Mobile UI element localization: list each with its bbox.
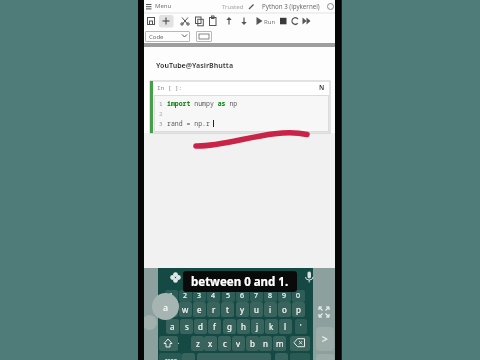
button[interactable]: 7: [250, 290, 263, 302]
staticText: g: [227, 321, 232, 332]
button[interactable]: f: [208, 319, 221, 334]
staticText: import numpy as np: [167, 99, 238, 108]
staticText: a: [170, 321, 175, 332]
button[interactable]: l: [279, 319, 292, 334]
staticText: z: [196, 338, 200, 349]
staticText: N: [319, 83, 325, 92]
button[interactable]: 3: [193, 290, 206, 302]
button[interactable]: Code: [145, 31, 190, 42]
staticText: n: [263, 338, 268, 349]
staticText: Trusted: [222, 3, 244, 11]
button[interactable]: 8: [264, 290, 277, 302]
staticText: 7: [254, 291, 259, 301]
staticText: u: [254, 304, 259, 315]
staticText: 3: [197, 291, 202, 301]
staticText: Run: [264, 18, 276, 26]
button[interactable]: u: [250, 302, 263, 317]
button[interactable]: i: [264, 302, 277, 317]
staticText: 1: [159, 100, 163, 108]
staticText: 3: [159, 120, 163, 128]
staticText: c: [223, 338, 227, 349]
staticText: d: [198, 321, 203, 332]
button[interactable]: w: [179, 302, 192, 317]
button[interactable]: ?123: [159, 353, 182, 360]
staticText: rand = np.r: [167, 119, 210, 128]
staticText: y: [240, 304, 245, 315]
button[interactable]: e: [193, 302, 206, 317]
staticText: x: [208, 338, 213, 349]
button[interactable]: n: [259, 336, 272, 351]
button[interactable]: z: [191, 336, 204, 351]
button[interactable]: a: [166, 319, 179, 334]
button[interactable]: v: [232, 336, 245, 351]
staticText: Menu: [155, 2, 172, 10]
staticText: j: [256, 321, 259, 332]
button[interactable]: c: [218, 336, 231, 351]
staticText: 2: [183, 291, 188, 301]
staticText: 1: [169, 291, 174, 301]
staticText: 5: [226, 291, 231, 301]
staticText: Python 3 (ipykernel): [262, 2, 320, 10]
button[interactable]: between 0 and 1.: [183, 271, 297, 292]
staticText: ': [300, 322, 302, 332]
button[interactable]: p: [292, 302, 305, 317]
button[interactable]: [252, 14, 292, 28]
button[interactable]: j: [251, 319, 264, 334]
button[interactable]: 1: [165, 290, 178, 302]
staticText: k: [269, 321, 274, 332]
button[interactable]: h: [237, 319, 250, 334]
staticText: YouTube@YasirBhutta: [156, 61, 234, 71]
button[interactable]: y: [236, 302, 249, 317]
button[interactable]: m: [273, 336, 286, 351]
staticText: 4: [211, 291, 216, 301]
staticText: b: [250, 338, 255, 349]
button[interactable]: ': [295, 319, 307, 334]
button[interactable]: 4: [207, 290, 220, 302]
staticText: 0: [296, 291, 301, 301]
button[interactable]: ,: [182, 353, 195, 360]
button[interactable]: [196, 31, 212, 42]
button[interactable]: o: [278, 302, 291, 317]
button[interactable]: [144, 0, 190, 13]
staticText: 9: [282, 291, 287, 301]
staticText: e: [197, 304, 202, 315]
button[interactable]: g: [223, 319, 236, 334]
staticText: i: [269, 304, 272, 315]
button[interactable]: 6: [236, 290, 249, 302]
staticText: s: [185, 321, 189, 332]
button[interactable]: t: [221, 302, 234, 317]
staticText: 6: [240, 291, 245, 301]
staticText: o: [282, 304, 287, 315]
staticText: In [ ]:: [157, 84, 183, 92]
staticText: a: [163, 301, 169, 313]
button[interactable]: x: [204, 336, 217, 351]
staticText: >: [322, 332, 328, 346]
button[interactable]: r: [207, 302, 220, 317]
button[interactable]: 9: [278, 290, 291, 302]
staticText: h: [241, 321, 246, 332]
button[interactable]: k: [265, 319, 278, 334]
button[interactable]: >: [316, 327, 334, 351]
button[interactable]: 5: [222, 290, 235, 302]
button[interactable]: b: [246, 336, 259, 351]
staticText: m: [276, 338, 284, 349]
staticText: p: [296, 304, 301, 315]
staticText: 2: [159, 110, 163, 118]
button[interactable]: [159, 336, 178, 351]
button[interactable]: 2: [179, 290, 192, 302]
button[interactable]: [290, 336, 310, 351]
button[interactable]: d: [194, 319, 207, 334]
staticText: t: [226, 304, 229, 315]
button[interactable]: 0: [292, 290, 305, 302]
staticText: between 0 and 1.: [191, 274, 289, 290]
button[interactable]: q: [165, 302, 178, 317]
staticText: r: [212, 304, 216, 315]
button[interactable]: s: [180, 319, 193, 334]
staticText: v: [236, 338, 241, 349]
button[interactable]: .: [275, 353, 288, 360]
staticText: w: [182, 304, 189, 315]
